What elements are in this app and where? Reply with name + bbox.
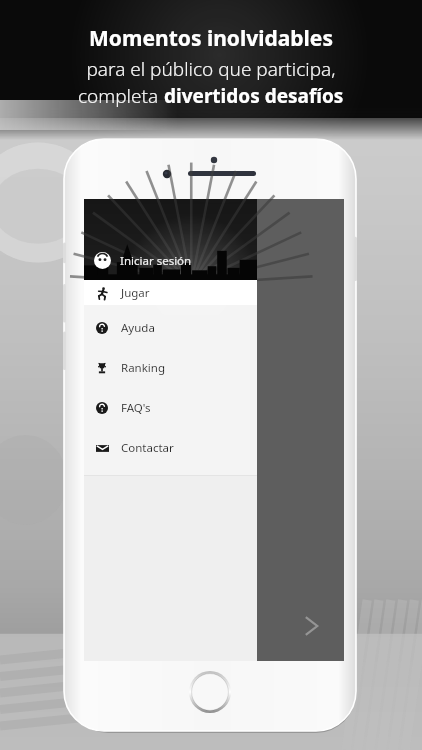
button[interactable]: Siguiente	[294, 609, 328, 643]
staticText: Contactar	[121, 440, 174, 456]
button[interactable]: FAQ's	[84, 395, 257, 420]
button[interactable]: Iniciar sesión	[84, 199, 257, 280]
staticText: Jugar	[121, 285, 150, 301]
staticText: Momentos inolvidables	[89, 24, 333, 53]
staticText: FAQ's	[121, 400, 151, 416]
staticText: Iniciar sesión	[120, 253, 192, 269]
button[interactable]: Jugar	[84, 280, 257, 305]
staticText: Ranking	[121, 360, 165, 376]
button[interactable]: Ranking	[84, 355, 257, 380]
button[interactable]: Contactar	[84, 435, 257, 460]
staticText: Supera cada etapa de tu ciudad y consigu…	[98, 339, 257, 400]
staticText: para el público que participa,	[86, 56, 336, 82]
staticText: Ayuda	[121, 320, 155, 336]
staticText: divertidos desafíos	[164, 83, 344, 109]
staticText: completa	[78, 83, 164, 109]
button[interactable]: Ayuda	[84, 315, 257, 340]
